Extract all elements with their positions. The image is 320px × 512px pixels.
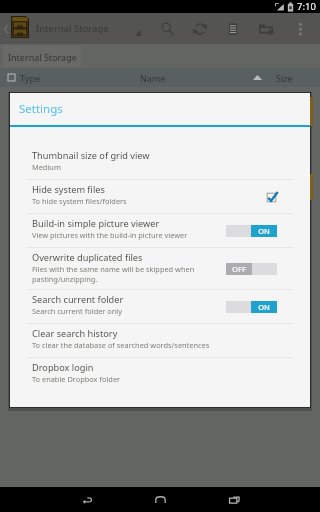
button[interactable]: Back: [62, 487, 111, 512]
staticText: Search current folder: [32, 293, 124, 306]
staticText: Thumbnail size of grid view: [32, 149, 150, 162]
button[interactable]: Thumbnail size of grid view: [10, 146, 310, 179]
staticText: Size: [276, 72, 293, 84]
staticText: Search current folder only: [32, 306, 123, 316]
staticText: To hide system files/folders: [32, 196, 127, 206]
staticText: View pictures with the build-in picture …: [32, 230, 188, 240]
button[interactable]: Overwrite duplicated files: [10, 248, 310, 289]
staticText: Overwrite duplicated files: [32, 251, 143, 264]
button[interactable]: Hide system files: [10, 180, 310, 213]
staticText: Name: [140, 72, 166, 84]
button[interactable]: Refresh: [184, 13, 216, 44]
staticText: ON: [258, 302, 270, 312]
button[interactable]: Hide system files toggle: [263, 189, 279, 205]
staticText: Dropbox login: [32, 361, 94, 374]
button[interactable]: Navigate up: [0, 13, 11, 44]
staticText: OFF: [232, 264, 246, 274]
button[interactable]: Build-in simple picture viewer: [10, 214, 310, 247]
button[interactable]: View mode: [217, 13, 249, 44]
button[interactable]: Dropbox login: [10, 358, 310, 391]
button[interactable]: Switch off: [226, 263, 277, 275]
staticText: Settings: [19, 101, 63, 117]
button[interactable]: Internal Storage: [36, 13, 141, 44]
button[interactable]: Switch on: [226, 301, 277, 313]
button[interactable]: Search current folder: [10, 290, 310, 323]
button[interactable]: Internal Storage: [3, 46, 81, 67]
button[interactable]: Clear search history: [10, 324, 310, 357]
button[interactable]: Select all: [8, 74, 15, 81]
button[interactable]: Home: [136, 487, 185, 512]
staticText: Hide system files: [32, 183, 105, 196]
button[interactable]: New folder: [250, 13, 282, 44]
staticText: Build-in simple picture viewer: [32, 217, 160, 230]
button[interactable]: Recent apps: [210, 487, 259, 512]
staticText: 7:10: [297, 0, 316, 13]
staticText: Type: [20, 72, 41, 84]
staticText: Internal Storage: [8, 51, 77, 63]
staticText: Medium: [32, 162, 61, 172]
staticText: To enable Dropbox folder: [32, 374, 121, 384]
button[interactable]: Switch on: [226, 225, 277, 237]
staticText: ON: [258, 226, 270, 236]
button[interactable]: More options: [292, 13, 308, 44]
staticText: Clear search history: [32, 327, 118, 340]
staticText: pasting/unzipping.: [32, 274, 98, 284]
staticText: Internal Storage: [36, 22, 109, 35]
staticText: To clear the database of searched words/…: [32, 340, 210, 350]
button[interactable]: App icon: [11, 16, 29, 38]
button[interactable]: Search: [152, 13, 184, 44]
staticText: Files with the same name will be skipped…: [32, 264, 195, 274]
